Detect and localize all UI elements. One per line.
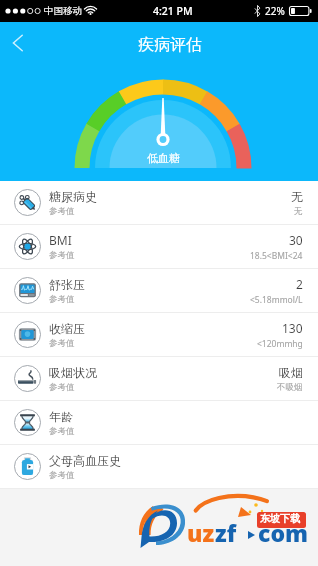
button[interactable]: 糖尿病史: [0, 181, 318, 224]
button[interactable]: 父母高血压史: [0, 445, 318, 488]
staticText: 不吸烟: [277, 382, 303, 393]
staticText: 东坡下载: [260, 512, 300, 525]
staticText: 参考值: [49, 470, 75, 481]
button[interactable]: 收缩压: [0, 313, 318, 356]
staticText: 父母高血压史: [49, 453, 121, 468]
staticText: 参考值: [49, 294, 75, 305]
button[interactable]: 舒张压: [0, 269, 318, 312]
staticText: 年龄: [49, 409, 73, 424]
staticText: 参考值: [49, 382, 75, 393]
staticText: BMI: [49, 232, 72, 248]
staticText: 2: [296, 276, 303, 292]
staticText: 18.5<BMI<24: [250, 250, 303, 262]
staticText: 收缩压: [49, 321, 85, 336]
staticText: 参考值: [49, 250, 75, 261]
staticText: 参考值: [49, 426, 75, 437]
staticText: zf: [215, 517, 237, 548]
staticText: 舒张压: [49, 277, 85, 292]
staticText: 22%: [265, 4, 285, 18]
staticText: 130: [282, 320, 303, 336]
staticText: 中国移动: [44, 5, 82, 17]
staticText: 无: [294, 206, 303, 217]
button[interactable]: 吸烟状况: [0, 357, 318, 400]
staticText: 30: [289, 232, 303, 248]
staticText: <120mmhg: [257, 338, 303, 350]
staticText: 参考值: [49, 338, 75, 349]
button[interactable]: 年龄: [0, 401, 318, 444]
staticText: 参考值: [49, 206, 75, 217]
staticText: 疾病评估: [138, 35, 202, 55]
staticText: com: [258, 517, 309, 548]
staticText: 糖尿病史: [49, 189, 97, 204]
button[interactable]: BMI: [0, 225, 318, 268]
staticText: <5.18mmol/L: [250, 294, 303, 306]
staticText: uz: [187, 517, 215, 548]
button[interactable]: Back: [0, 24, 38, 62]
staticText: 无: [291, 189, 303, 204]
staticText: 低血糖: [147, 151, 180, 165]
staticText: 吸烟状况: [49, 365, 97, 380]
staticText: 吸烟: [279, 365, 303, 380]
staticText: 4:21 PM: [153, 4, 193, 18]
